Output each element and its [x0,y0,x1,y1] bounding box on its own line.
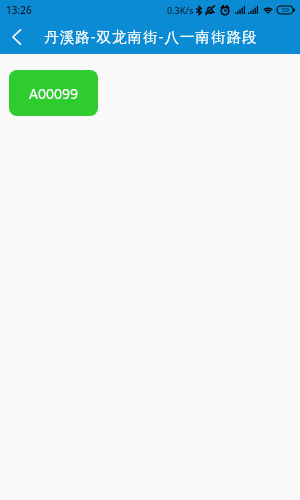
staticText: A00099 [29,84,78,103]
button[interactable]: A00099 [9,70,98,116]
button[interactable]: Back [0,20,32,54]
staticText: 13:26 [6,3,32,17]
staticText: 丹溪路-双龙南街-八一南街路段 [44,26,258,46]
staticText: 50 [282,6,289,14]
staticText: 0.3K/s [167,4,194,16]
